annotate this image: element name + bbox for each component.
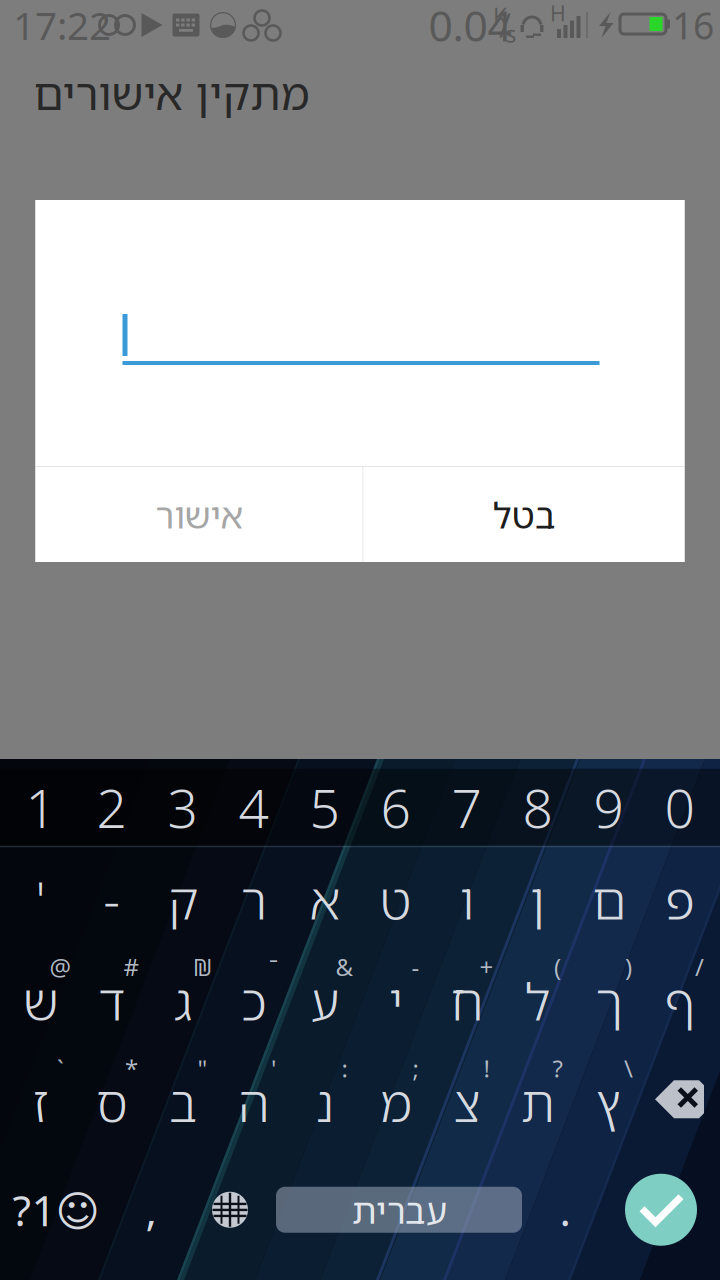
staticText: עברית [351, 1185, 446, 1234]
button[interactable]: פ [644, 847, 715, 946]
button[interactable]: ד [76, 946, 147, 1049]
staticText: 17:22 [13, 0, 111, 51]
staticText: פ [664, 865, 694, 934]
staticText: ש [22, 966, 58, 1035]
staticText: 5 [309, 771, 339, 843]
button[interactable]: ץ [573, 1049, 644, 1149]
button[interactable]: ג [147, 946, 218, 1049]
staticText: ד [98, 966, 125, 1035]
staticText: ב [168, 1068, 196, 1137]
staticText: / [499, 3, 511, 47]
button[interactable]: 7 [431, 769, 502, 846]
button[interactable]: ז [5, 1049, 76, 1149]
staticText: ? [552, 1052, 562, 1085]
button[interactable]: ת [502, 1049, 573, 1149]
staticText: K [493, 1, 507, 31]
button[interactable]: 3 [147, 769, 218, 846]
staticText: ו [459, 865, 473, 934]
button[interactable]: 4 [218, 769, 289, 846]
button[interactable]: ה [218, 1049, 289, 1149]
staticText: : [341, 1052, 347, 1085]
button[interactable]: א [289, 847, 360, 946]
button[interactable]: - [76, 847, 147, 946]
staticText: , [145, 1181, 156, 1239]
staticText: א [309, 865, 340, 934]
button[interactable]: ח [431, 946, 502, 1049]
button[interactable]: ע [289, 946, 360, 1049]
staticText: 7 [451, 771, 481, 843]
button[interactable]: . [528, 1149, 602, 1270]
button[interactable]: 2 [76, 769, 147, 846]
button[interactable]: ם [573, 847, 644, 946]
button[interactable]: 5 [289, 769, 360, 846]
staticText: מ [379, 1068, 412, 1137]
button[interactable]: Backspace [644, 1049, 715, 1149]
button[interactable]: ר [218, 847, 289, 946]
button[interactable]: , [112, 1149, 190, 1270]
staticText: ף [664, 966, 695, 1035]
staticText: 3 [167, 771, 197, 843]
button[interactable]: 0 [644, 769, 715, 846]
staticText: ` [57, 1052, 64, 1085]
staticText: 0 [664, 771, 694, 843]
button[interactable]: 6 [360, 769, 431, 846]
staticText: . [559, 1181, 570, 1239]
staticText: ג [173, 966, 191, 1035]
staticText: s [505, 19, 516, 49]
staticText: 0.04 [428, 0, 511, 54]
button[interactable]: ש [5, 946, 76, 1049]
staticText: כ [240, 966, 266, 1035]
staticText: ן [529, 865, 545, 934]
staticText: \ [624, 1052, 633, 1085]
staticText: ס [95, 1068, 127, 1137]
staticText: ח [450, 966, 483, 1035]
staticText: צ [453, 1068, 480, 1137]
button[interactable]: Enter [602, 1149, 720, 1270]
button[interactable]: ' [5, 847, 76, 946]
button[interactable]: ס [76, 1049, 147, 1149]
button[interactable]: עברית [270, 1149, 528, 1270]
button[interactable]: ל [502, 946, 573, 1049]
staticText: " [197, 1052, 207, 1085]
staticText: + [479, 950, 493, 983]
staticText: 2 [96, 771, 126, 843]
button[interactable]: 9 [573, 769, 644, 846]
staticText: ?1☺ [12, 1181, 99, 1239]
button[interactable]: צ [431, 1049, 502, 1149]
button[interactable]: בטל [363, 467, 684, 562]
button[interactable]: 8 [502, 769, 573, 846]
staticText: & [335, 950, 353, 983]
staticText: ( [554, 950, 561, 983]
staticText: * [125, 1052, 138, 1085]
staticText: מתקין אישורים [33, 63, 309, 123]
button[interactable]: ק [147, 847, 218, 946]
button[interactable]: אישור [35, 467, 362, 562]
button[interactable]: Change language [190, 1149, 270, 1270]
staticText: # [123, 950, 139, 983]
button[interactable]: ו [431, 847, 502, 946]
button[interactable]: נ [289, 1049, 360, 1149]
staticText: אישור [155, 490, 243, 539]
staticText: ל [524, 966, 550, 1035]
button[interactable]: ף [644, 946, 715, 1049]
button[interactable]: ב [147, 1049, 218, 1149]
staticText: 16 [672, 0, 714, 50]
button[interactable]: ן [502, 847, 573, 946]
staticText: ץ [595, 1068, 621, 1137]
staticText: 9 [593, 771, 623, 843]
button[interactable]: ט [360, 847, 431, 946]
button[interactable]: מ [360, 1049, 431, 1149]
button[interactable]: Symbols and emoji [0, 1149, 112, 1270]
staticText: נ [315, 1068, 334, 1137]
button[interactable]: י [360, 946, 431, 1049]
staticText: 6 [380, 771, 410, 843]
staticText: - [411, 950, 419, 983]
button[interactable]: כ [218, 946, 289, 1049]
staticText: ' [35, 865, 45, 934]
staticText: @ [49, 950, 71, 983]
button[interactable]: ך [573, 946, 644, 1049]
staticText: 4 [238, 771, 268, 843]
staticText: ך [595, 966, 622, 1035]
staticText: 1 [25, 771, 55, 843]
button[interactable]: 1 [5, 769, 76, 846]
